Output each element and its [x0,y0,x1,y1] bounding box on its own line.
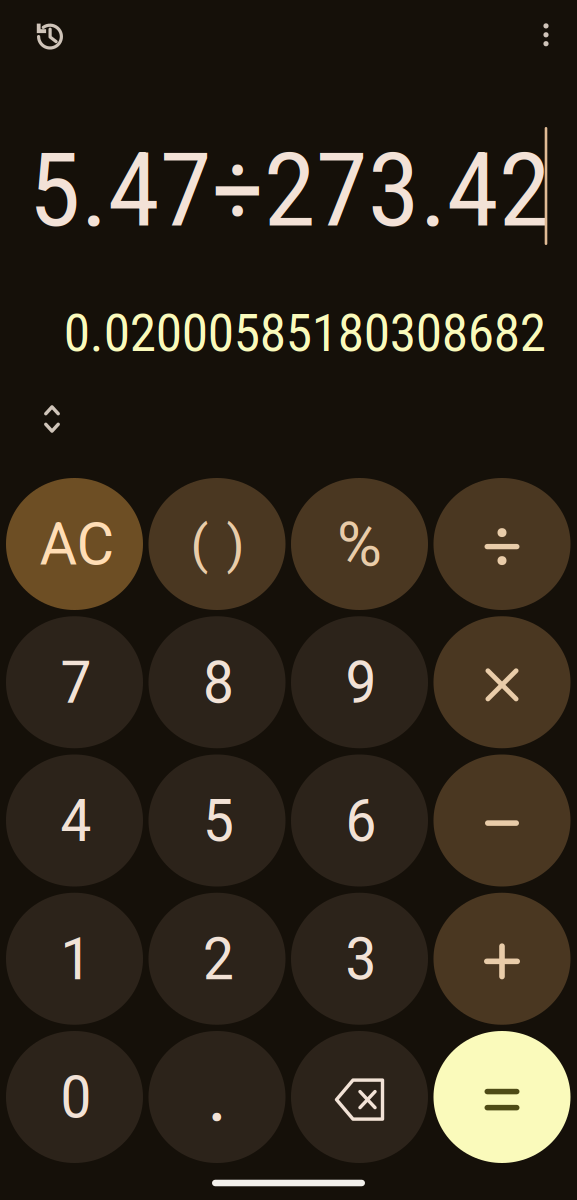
button[interactable]: AC [6,478,143,610]
button[interactable]: Divide [433,478,570,610]
button[interactable]: 0 [6,1031,143,1163]
button[interactable]: More options [522,11,570,59]
button[interactable]: Expand result [29,396,75,442]
staticText: 5.47÷273.42 [29,130,551,251]
button[interactable]: 7 [6,616,143,748]
button[interactable]: . [148,1031,285,1163]
button[interactable]: 3 [291,893,428,1025]
staticText: . [207,1049,227,1140]
button[interactable]: 9 [291,616,428,748]
staticText: 7 [60,648,91,717]
staticText: 0 [60,1063,91,1132]
button[interactable]: 4 [6,754,143,886]
button[interactable]: Backspace [291,1031,428,1163]
staticText: 0.02000585180308682 [64,303,546,364]
button[interactable]: Add [433,893,570,1025]
staticText: 5 [203,787,234,855]
button[interactable]: 2 [148,893,285,1025]
staticText: 3 [345,925,376,994]
button[interactable]: Subtract [433,754,570,886]
button[interactable]: Multiply [433,616,570,748]
staticText: % [337,509,382,581]
button[interactable]: 5 [148,754,285,886]
staticText: ( ) [190,514,244,575]
staticText: AC [39,510,114,579]
staticText: 6 [345,787,376,855]
button[interactable]: History [24,10,76,62]
button[interactable]: % [291,478,428,610]
staticText: 2 [203,925,234,994]
staticText: 4 [60,787,91,855]
staticText: 8 [203,648,234,717]
button[interactable]: 8 [148,616,285,748]
button[interactable]: 6 [291,754,428,886]
button[interactable]: ( ) [148,478,285,610]
button[interactable]: 1 [6,893,143,1025]
staticText: 1 [60,925,91,994]
button[interactable]: Equals [433,1031,570,1163]
staticText: 9 [345,648,376,717]
